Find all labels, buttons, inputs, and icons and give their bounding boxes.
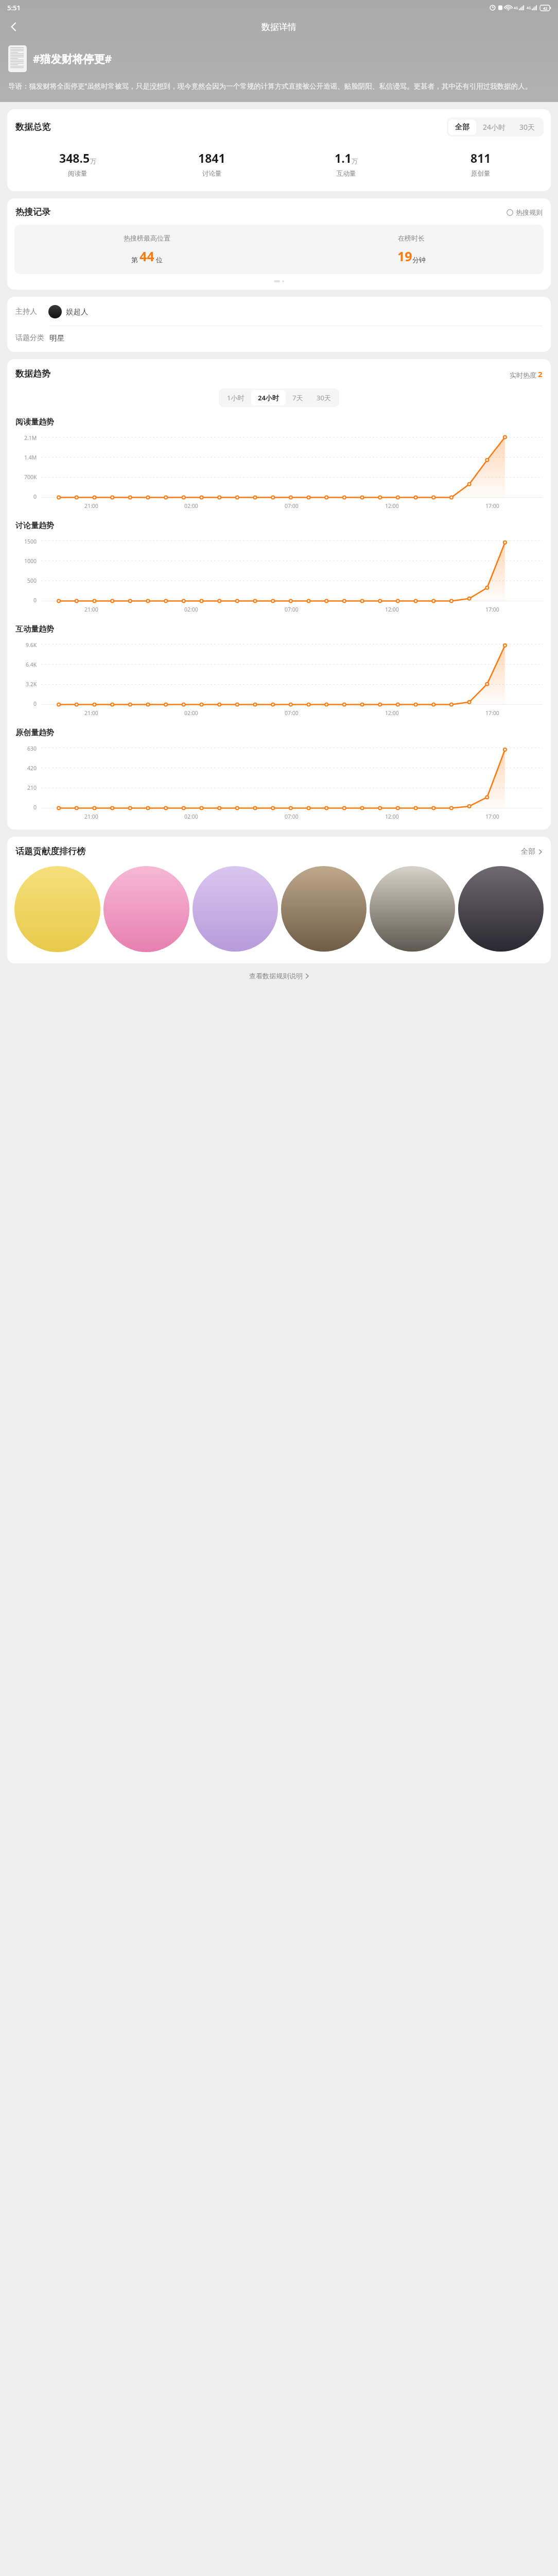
staticText: 7天 — [292, 393, 303, 402]
staticText: 21:00 — [84, 709, 98, 717]
staticText: 0 — [33, 493, 37, 500]
staticText: 原创量趋势 — [15, 728, 54, 738]
button[interactable]: 7天 — [286, 390, 310, 405]
staticText: 21:00 — [84, 502, 98, 510]
staticText: 主持人 — [15, 307, 37, 316]
staticText: 21:00 — [84, 813, 98, 820]
staticText: 6.4K — [26, 661, 37, 668]
staticText: 2.1M — [24, 434, 37, 442]
button[interactable] — [8, 45, 27, 72]
staticText: 全部 — [521, 847, 535, 856]
staticText: 万 — [352, 157, 358, 165]
staticText: 原创量 — [471, 170, 491, 178]
staticText: 1500 — [24, 538, 37, 545]
staticText: 话题贡献度排行榜 — [15, 846, 85, 857]
button[interactable]: 查看数据规则说明 — [0, 972, 558, 980]
button[interactable]: Contributor — [14, 866, 100, 952]
staticText: 12:00 — [385, 502, 399, 510]
staticText: 210 — [27, 784, 37, 791]
staticText: 热搜榜最高位置 — [124, 234, 170, 242]
staticText: 第 — [131, 256, 138, 264]
staticText: 02:00 — [184, 813, 198, 820]
staticText: 万 — [90, 157, 96, 165]
staticText: 12:00 — [385, 813, 399, 820]
staticText: 630 — [27, 745, 37, 752]
button[interactable]: Contributor — [103, 866, 189, 952]
staticText: 互动量 — [337, 170, 356, 178]
button[interactable]: Contributor — [458, 866, 544, 952]
staticText: 17:00 — [485, 502, 499, 510]
button[interactable]: 24小时 — [476, 119, 513, 135]
staticText: 2 — [538, 369, 543, 379]
staticText: 讨论量 — [202, 170, 222, 178]
button[interactable]: 811 — [413, 150, 548, 178]
staticText: 4G — [527, 6, 531, 10]
button[interactable]: 热搜规则 — [507, 208, 543, 216]
staticText: 12:00 — [385, 606, 399, 613]
staticText: 全部 — [455, 123, 469, 132]
staticText: 02:00 — [184, 502, 198, 510]
staticText: 07:00 — [285, 813, 299, 820]
staticText: 1000 — [24, 557, 37, 565]
staticText: 348.5 — [59, 150, 90, 166]
staticText: 热搜记录 — [15, 207, 50, 217]
staticText: 4G — [514, 6, 518, 10]
staticText: 阅读量 — [68, 170, 88, 178]
staticText: 700K — [24, 473, 37, 481]
staticText: 0 — [33, 804, 37, 811]
staticText: 1.4M — [24, 454, 37, 461]
button[interactable]: Back — [4, 17, 24, 37]
staticText: 44 — [139, 247, 154, 265]
staticText: 24小时 — [483, 122, 506, 132]
button[interactable]: Contributor — [370, 866, 455, 952]
button[interactable]: 1.1 — [279, 150, 413, 178]
staticText: 位 — [156, 256, 163, 264]
staticText: 0 — [33, 597, 37, 604]
staticText: 17:00 — [485, 606, 499, 613]
staticText: 0 — [33, 700, 37, 707]
staticText: 811 — [470, 150, 491, 166]
staticText: 5:51 — [7, 3, 21, 12]
staticText: 数据总览 — [15, 122, 50, 132]
button[interactable]: 全部 — [521, 847, 543, 856]
button[interactable]: Contributor — [193, 866, 278, 952]
staticText: 9.6K — [26, 641, 37, 649]
staticText: 实时热度 — [510, 371, 536, 379]
button[interactable]: 30天 — [310, 390, 338, 405]
button[interactable]: 1小时 — [220, 390, 251, 405]
button[interactable]: 全部 — [448, 120, 476, 135]
staticText: 3.2K — [26, 681, 37, 688]
button[interactable]: #猫发财将停更# — [33, 52, 112, 66]
button[interactable]: 348.5 — [10, 150, 145, 178]
staticText: 17:00 — [485, 813, 499, 820]
staticText: 07:00 — [285, 709, 299, 717]
button[interactable]: 主持人 — [15, 305, 543, 318]
button[interactable]: 24小时 — [251, 390, 286, 405]
staticText: 娱超人 — [66, 307, 89, 316]
staticText: 07:00 — [285, 502, 299, 510]
button[interactable]: 话题分类 — [15, 333, 543, 343]
staticText: 30天 — [317, 393, 331, 402]
button[interactable]: 实时热度 — [510, 369, 543, 379]
button[interactable]: 30天 — [513, 119, 542, 135]
staticText: 19 — [397, 247, 412, 265]
staticText: 分钟 — [412, 256, 426, 264]
staticText: 查看数据规则说明 — [249, 972, 303, 980]
staticText: 在榜时长 — [398, 234, 425, 242]
staticText: 420 — [27, 765, 37, 772]
staticText: 07:00 — [285, 606, 299, 613]
staticText: 1小时 — [227, 393, 245, 402]
staticText: 12:00 — [385, 709, 399, 717]
staticText: 热搜规则 — [516, 208, 543, 216]
staticText: 02:00 — [184, 606, 198, 613]
staticText: 导语：猫发财将全面停更“虽然时常被骂，只是没想到，现今竟然会因为一个常规的计算方… — [8, 81, 532, 91]
staticText: 500 — [27, 577, 37, 584]
staticText: 30天 — [519, 122, 535, 132]
button[interactable]: 1841 — [145, 150, 279, 178]
staticText: 数据趋势 — [15, 368, 50, 379]
staticText: 24小时 — [258, 393, 279, 402]
button[interactable]: Contributor — [281, 866, 367, 952]
staticText: 明星 — [49, 333, 64, 343]
staticText: 话题分类 — [15, 333, 44, 343]
staticText: 1841 — [198, 150, 225, 166]
